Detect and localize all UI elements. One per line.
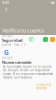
- button[interactable]: Back: [2, 5, 10, 13]
- staticText: ✆: [28, 36, 34, 43]
- staticText: ▮▮▮: [51, 1, 54, 4]
- staticText: Verifica tu cuenta: [2, 27, 44, 34]
- button[interactable]: Call: [29, 37, 34, 42]
- staticText: 9:41: [2, 0, 9, 5]
- staticText: G: [4, 48, 9, 57]
- staticText: para mí · hace 2 h: [2, 43, 26, 46]
- staticText: Seguridad: [2, 37, 23, 43]
- staticText: Google: [2, 34, 13, 37]
- staticText: Se ha iniciado sesión en tu cuenta de Go…: [3, 65, 53, 79]
- staticText: ‹: [5, 4, 7, 14]
- staticText: Comprobar actividad: [36, 83, 51, 90]
- button[interactable]: Video: [43, 37, 48, 42]
- staticText: Google: [2, 56, 13, 59]
- staticText: Nueva conexión: [2, 59, 32, 65]
- button[interactable]: More: [50, 37, 55, 42]
